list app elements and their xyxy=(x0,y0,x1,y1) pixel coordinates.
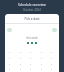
staticText: Pick a date xyxy=(5,17,59,21)
button[interactable]: Previous xyxy=(7,28,12,32)
button[interactable]: Next xyxy=(52,28,57,32)
staticText: Schedule overview xyxy=(18,3,46,7)
button[interactable] xyxy=(35,42,37,44)
staticText: this week xyxy=(5,36,59,40)
button[interactable] xyxy=(27,42,29,44)
button[interactable] xyxy=(31,42,33,44)
staticText: October 2024 xyxy=(23,8,41,12)
